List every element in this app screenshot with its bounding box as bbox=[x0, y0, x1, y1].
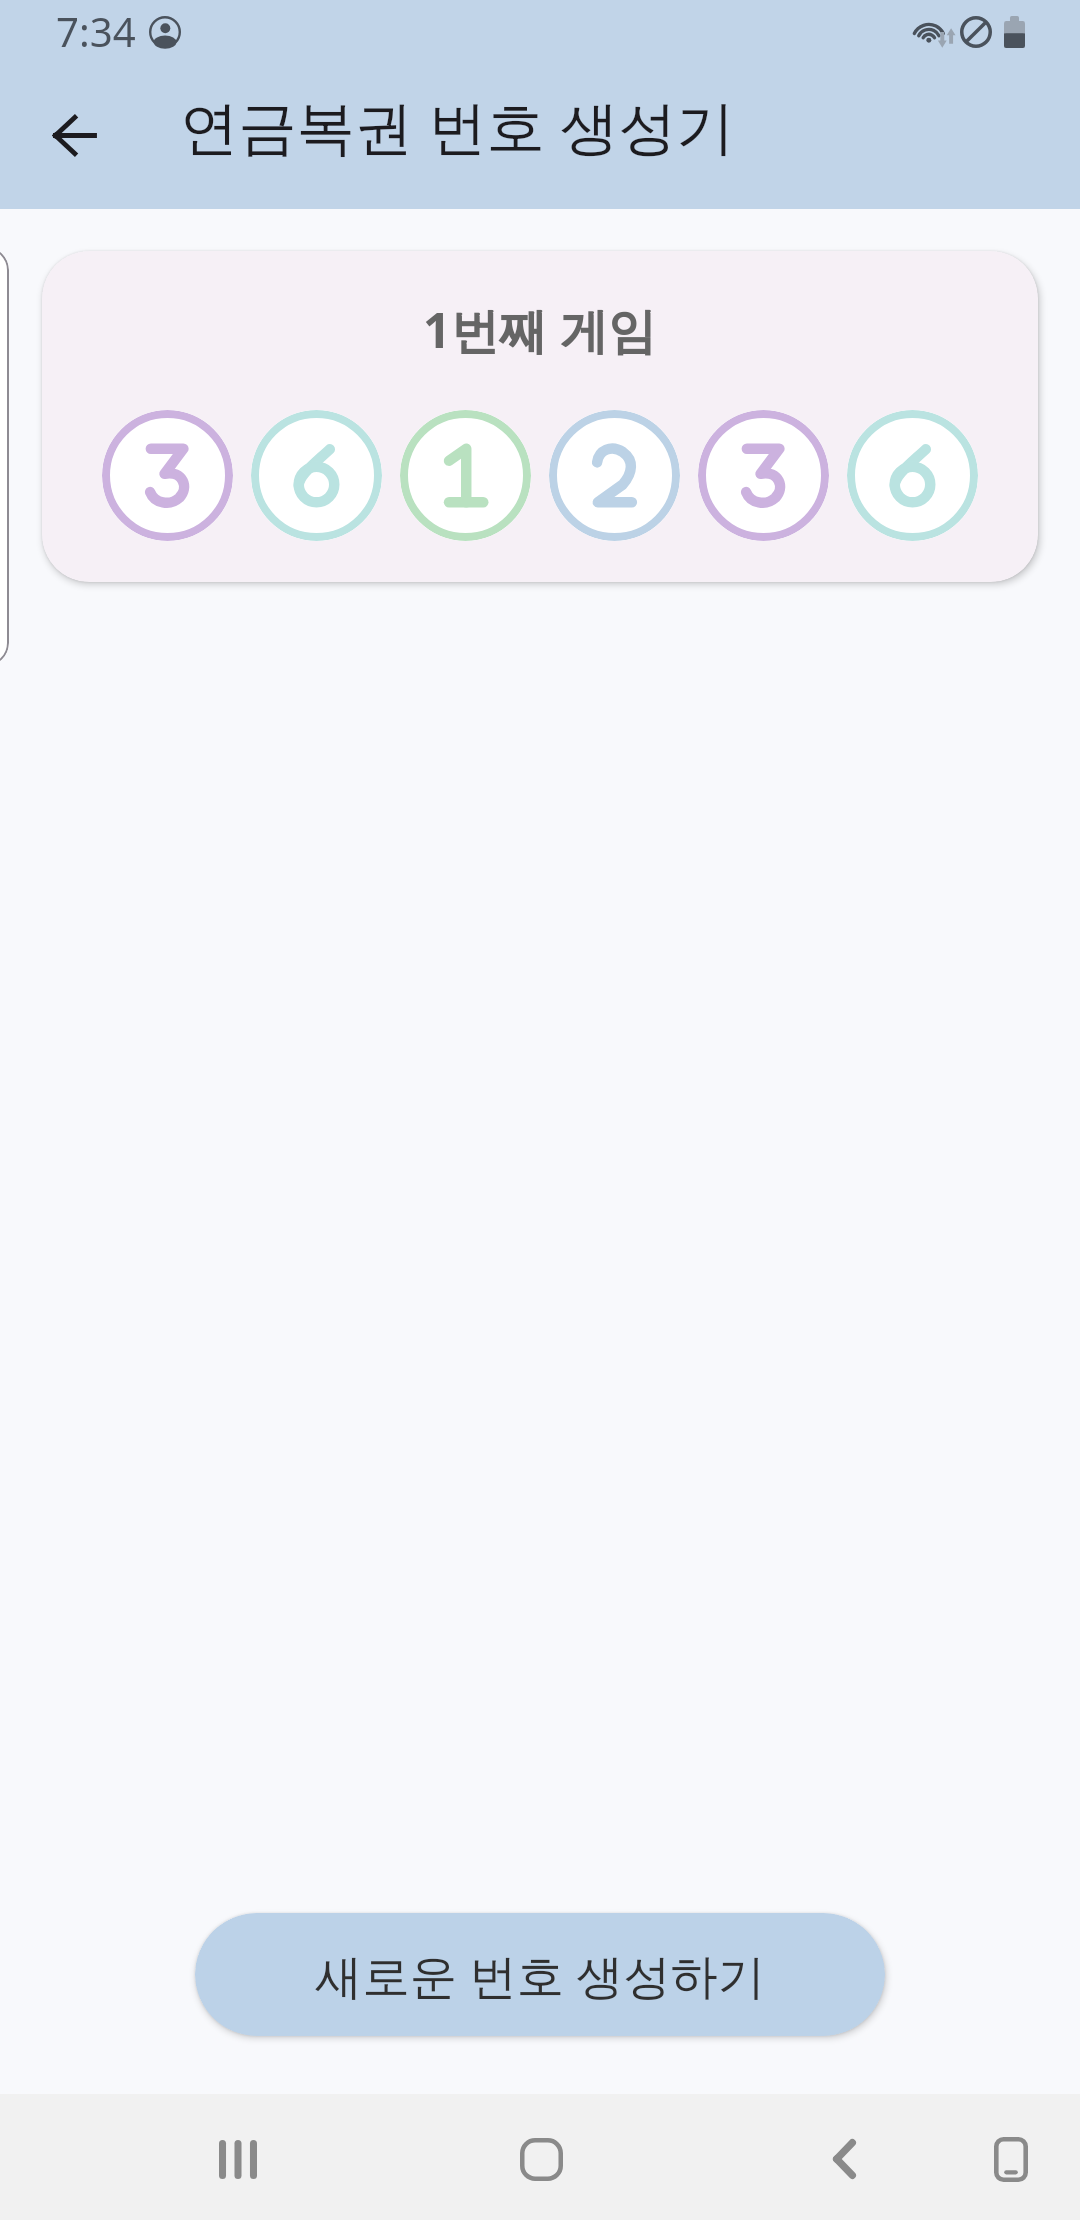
button[interactable]: Switch input method bbox=[956, 2104, 1066, 2214]
staticText: 1번째 게임 bbox=[423, 296, 657, 362]
button[interactable]: Home bbox=[486, 2104, 596, 2214]
button[interactable]: 새로운 번호 생성하기 bbox=[195, 1913, 885, 2036]
staticText: 7:34 bbox=[56, 4, 136, 59]
staticText: 연금복권 번호 생성기 bbox=[180, 86, 735, 166]
button[interactable]: Back bbox=[11, 72, 137, 198]
button[interactable]: Back bbox=[789, 2104, 899, 2214]
button[interactable]: Recents bbox=[183, 2104, 293, 2214]
staticText: 새로운 번호 생성하기 bbox=[315, 1942, 765, 2007]
